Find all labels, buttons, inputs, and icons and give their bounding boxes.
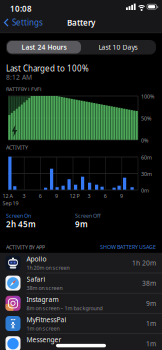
staticText: 1m [146, 319, 156, 328]
staticText: 3 [87, 192, 90, 199]
staticText: Last 10 Days [98, 43, 137, 52]
button[interactable]: SHOW BATTERY USAGE [100, 243, 156, 250]
staticText: 38m on screen [26, 284, 62, 291]
staticText: 8:12 AM [6, 73, 32, 82]
staticText: 2h 45m [6, 219, 36, 229]
staticText: 50% [141, 115, 151, 122]
staticText: Instagram [26, 295, 58, 304]
staticText: 0m [141, 187, 149, 194]
staticText: Apollo [26, 254, 46, 263]
staticText: 30m [141, 170, 152, 177]
staticText: 0% [141, 137, 148, 144]
staticText: 60m [141, 154, 152, 161]
button[interactable]: Safari [0, 273, 162, 293]
staticText: Last Charged to 100% [6, 63, 89, 74]
staticText: Sep 19 [2, 200, 18, 207]
staticText: BATTERY LEVEL [6, 86, 43, 93]
staticText: 9 [55, 192, 58, 199]
button[interactable]: Settings [3, 17, 43, 28]
staticText: MyFitnessPal [26, 315, 66, 324]
button[interactable]: Apollo [0, 253, 162, 273]
button[interactable]: Last 24 Hours [7, 41, 81, 53]
staticText: 6 [104, 192, 107, 199]
staticText: 1m on screen [26, 325, 59, 332]
staticText: ACTIVITY [6, 144, 28, 151]
staticText: Messenger [26, 335, 61, 344]
staticText: SHOW BATTERY USAGE [100, 243, 156, 250]
staticText: 8m on screen – 1m background [26, 305, 102, 312]
staticText: 12 A [2, 192, 12, 199]
button[interactable]: MyFitnessPal [0, 313, 162, 334]
staticText: Battery [67, 17, 95, 28]
staticText: Screen Off [75, 212, 101, 219]
staticText: Screen On [6, 212, 31, 219]
staticText: 9m [146, 299, 156, 308]
staticText: 9m [75, 219, 88, 229]
button[interactable]: Last 10 Days [81, 41, 155, 53]
staticText: Last 24 Hours [21, 43, 66, 52]
staticText: 10:08 [10, 3, 32, 14]
button[interactable]: Instagram [0, 293, 162, 313]
staticText: 12 P [69, 192, 79, 199]
staticText: 9 [120, 192, 123, 199]
staticText: 3 [22, 192, 25, 199]
staticText: 1h 20m on screen [26, 264, 69, 271]
staticText: 38m [142, 279, 156, 288]
staticText: Settings [12, 17, 43, 28]
staticText: ACTIVITY BY APP [6, 244, 45, 251]
staticText: 1h 20m [132, 258, 156, 267]
staticText: 1m [146, 339, 156, 348]
button[interactable]: Messenger [0, 334, 162, 350]
staticText: 6 [39, 192, 42, 199]
staticText: 100% [141, 93, 154, 100]
staticText: Safari [26, 275, 45, 284]
